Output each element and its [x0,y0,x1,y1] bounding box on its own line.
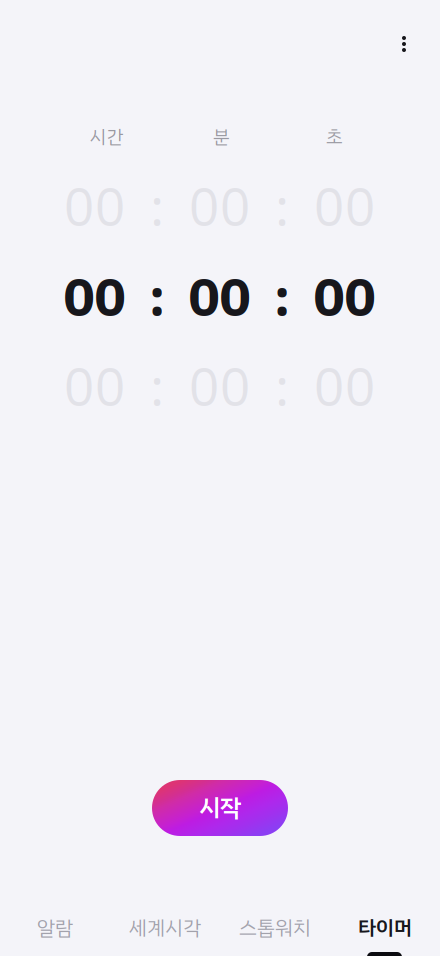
button[interactable]: 타이머 [330,900,440,956]
staticText: 알람 [37,913,73,943]
staticText: 00 [313,259,375,337]
button[interactable]: 시작 [152,780,288,836]
staticText: 초 [326,123,343,151]
staticText: 00 [313,169,375,247]
staticText: 00 [188,349,250,427]
staticText: 00 [63,349,125,427]
staticText: 00 [313,349,375,427]
staticText: : [149,349,164,427]
staticText: 타이머 [358,913,412,943]
staticText: 세계시각 [129,913,201,943]
staticText: 시간 [89,123,123,151]
staticText: 스톱워치 [239,913,311,943]
button[interactable]: 알람 [0,900,110,956]
staticText: 00 [188,259,250,337]
staticText: : [274,169,289,247]
staticText: : [274,349,289,427]
staticText: 00 [188,169,250,247]
staticText: 시작 [199,790,241,826]
staticText: 00 [63,169,125,247]
staticText: 00 [63,259,125,337]
button[interactable]: 스톱워치 [220,900,330,956]
staticText: : [149,169,164,247]
staticText: : [148,259,165,337]
button[interactable]: More options [378,18,430,70]
staticText: 분 [213,123,230,151]
button[interactable]: 세계시각 [110,900,220,956]
staticText: : [273,259,290,337]
